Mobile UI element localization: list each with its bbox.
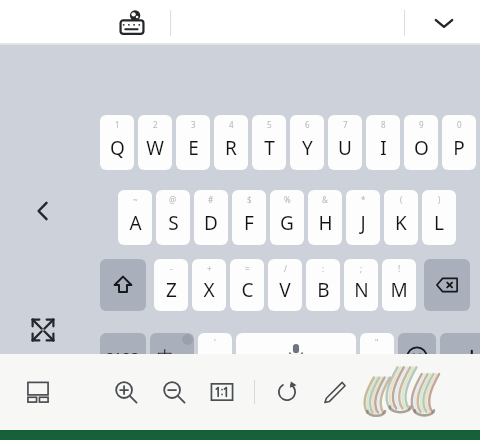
staticText: ' (214, 337, 216, 348)
staticText: 0 (457, 119, 462, 130)
button[interactable]: Previous (22, 190, 64, 232)
staticText: = (245, 263, 250, 274)
button[interactable]: ~ (118, 190, 152, 245)
button[interactable]: " (360, 333, 394, 381)
staticText: ! (398, 263, 401, 274)
staticText: ) (438, 194, 441, 205)
button[interactable]: 1 (100, 115, 134, 170)
staticText: $ (247, 194, 252, 205)
staticText: Z (166, 277, 177, 303)
button[interactable]: Zoom out (154, 372, 194, 412)
button[interactable]: Enter (440, 333, 480, 381)
button[interactable]: + (192, 259, 226, 311)
staticText: J (360, 210, 366, 236)
staticText: 9 (419, 119, 424, 130)
button[interactable]: : (306, 259, 340, 311)
button[interactable]: Layout (18, 372, 58, 412)
staticText: # (208, 194, 214, 205)
staticText: A (129, 210, 142, 236)
button[interactable]: # (194, 190, 228, 245)
button[interactable]: Draw (315, 372, 355, 412)
button[interactable]: ) (422, 190, 456, 245)
staticText: K (395, 210, 407, 236)
staticText: 3 (191, 119, 196, 130)
button[interactable]: 中 (150, 333, 194, 381)
button[interactable]: Resize keyboard (22, 309, 64, 351)
staticText: S (168, 210, 179, 236)
button[interactable]: % (270, 190, 304, 245)
staticText: F (244, 210, 254, 236)
staticText: O (414, 135, 429, 161)
staticText: Y (302, 135, 313, 161)
button[interactable]: * (346, 190, 380, 245)
button[interactable]: / (268, 259, 302, 311)
staticText: ~ (133, 194, 138, 205)
staticText: I (380, 135, 387, 161)
button[interactable]: 5 (252, 115, 286, 170)
staticText: C (241, 277, 254, 303)
staticText: P (453, 135, 465, 161)
staticText: 5 (267, 119, 272, 130)
staticText: ?123 (107, 347, 140, 367)
staticText: N (354, 277, 369, 303)
button[interactable]: Switch input language (110, 1, 154, 45)
staticText: D (204, 210, 218, 236)
staticText: L (434, 210, 444, 236)
staticText: V (279, 277, 291, 303)
button[interactable]: 8 (366, 115, 400, 170)
staticText: ; (360, 263, 363, 274)
button[interactable]: - (154, 259, 188, 311)
button[interactable]: & (308, 190, 342, 245)
button[interactable]: Space (236, 333, 356, 381)
staticText: W (146, 135, 164, 161)
staticText: B (317, 277, 330, 303)
button[interactable]: ; (344, 259, 378, 311)
staticText: / (284, 263, 287, 274)
button[interactable]: 2 (138, 115, 172, 170)
button[interactable]: 4 (214, 115, 248, 170)
button[interactable]: 3 (176, 115, 210, 170)
button[interactable]: ! (382, 259, 416, 311)
staticText: - (170, 263, 173, 274)
button[interactable]: 7 (328, 115, 362, 170)
staticText: ( (400, 194, 403, 205)
button[interactable]: Zoom in (106, 372, 146, 412)
staticText: + (207, 263, 212, 274)
button[interactable]: Actual size (202, 372, 242, 412)
staticText: 4 (229, 119, 234, 130)
button[interactable]: Brush styles (359, 368, 445, 416)
button[interactable]: @ (156, 190, 190, 245)
staticText: " (375, 337, 379, 348)
staticText: T (264, 135, 275, 161)
button[interactable]: ?123 (100, 333, 146, 381)
button[interactable]: Emoji (398, 333, 436, 381)
button[interactable]: = (230, 259, 264, 311)
staticText: E (188, 135, 199, 161)
staticText: M (390, 277, 408, 303)
staticText: Q (110, 135, 125, 161)
staticText: H (318, 210, 333, 236)
staticText: 7 (343, 119, 348, 130)
button[interactable]: Shift (100, 259, 146, 311)
button[interactable]: ( (384, 190, 418, 245)
button[interactable]: Rotate (267, 372, 307, 412)
staticText: 中 (157, 347, 174, 368)
staticText: U (338, 135, 352, 161)
button[interactable]: ' (198, 333, 232, 381)
staticText: X (203, 277, 215, 303)
button[interactable]: 9 (404, 115, 438, 170)
staticText: % (284, 194, 291, 205)
staticText: R (225, 135, 237, 161)
staticText: 8 (381, 119, 386, 130)
staticText: : (322, 263, 325, 274)
button[interactable]: 0 (442, 115, 476, 170)
staticText: 1 (115, 119, 120, 130)
button[interactable]: Hide keyboard (422, 1, 466, 45)
button[interactable]: Backspace (424, 259, 470, 311)
button[interactable]: 6 (290, 115, 324, 170)
button[interactable]: $ (232, 190, 266, 245)
staticText: * (361, 194, 366, 205)
staticText: 2 (153, 119, 158, 130)
